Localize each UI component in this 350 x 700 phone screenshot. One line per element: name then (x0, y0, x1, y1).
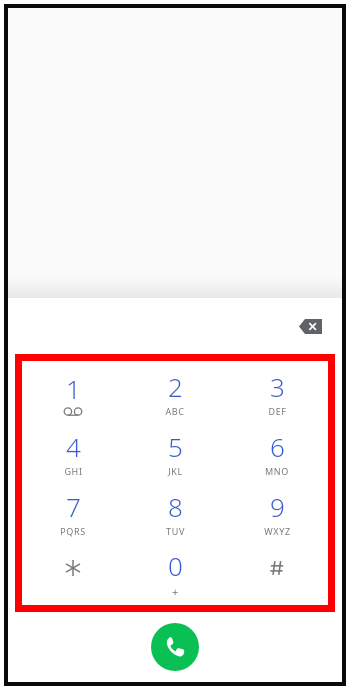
button[interactable]: 0 (124, 545, 226, 601)
button[interactable]: 6 (226, 425, 328, 481)
staticText: + (172, 584, 179, 599)
staticText: PQRS (60, 525, 86, 537)
button[interactable] (226, 545, 328, 601)
staticText: DEF (268, 405, 287, 417)
staticText: MNO (265, 465, 289, 477)
button[interactable]: 4 (22, 425, 124, 481)
staticText: 5 (168, 429, 183, 464)
staticText: ABC (165, 405, 185, 417)
staticText: 4 (66, 429, 81, 464)
button[interactable]: 9 (226, 485, 328, 541)
staticText: 9 (270, 489, 285, 524)
button[interactable]: 2 (124, 365, 226, 421)
staticText: 7 (66, 489, 81, 524)
staticText: 0 (168, 548, 183, 583)
staticText: WXYZ (264, 525, 291, 537)
staticText: 1 (66, 371, 81, 406)
button[interactable] (22, 545, 124, 601)
button[interactable]: 5 (124, 425, 226, 481)
staticText: GHI (64, 465, 83, 477)
button[interactable]: Backspace (288, 308, 332, 344)
staticText: 6 (270, 429, 285, 464)
staticText: 8 (168, 489, 183, 524)
staticText: TUV (166, 525, 185, 537)
staticText: 3 (270, 369, 285, 404)
button[interactable]: 1 (22, 365, 124, 421)
button[interactable]: 7 (22, 485, 124, 541)
button[interactable]: 8 (124, 485, 226, 541)
button[interactable]: Call (151, 623, 199, 671)
staticText: JKL (168, 465, 183, 477)
staticText: 2 (168, 369, 183, 404)
button[interactable]: 3 (226, 365, 328, 421)
